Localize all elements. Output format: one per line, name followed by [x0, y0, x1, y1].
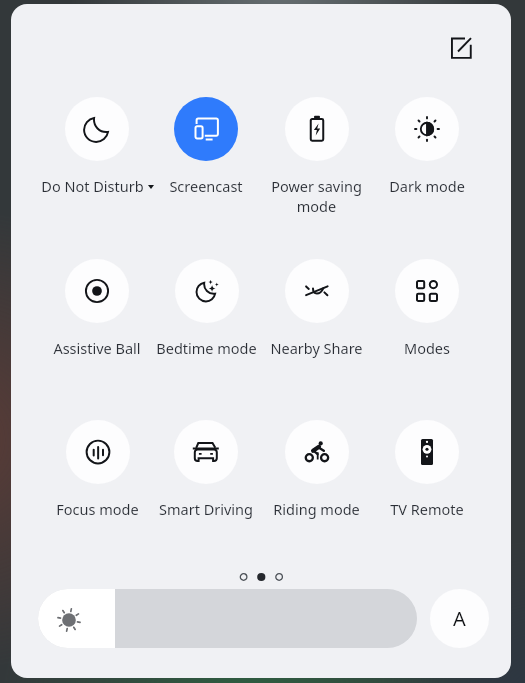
button[interactable]: Brightness: [38, 589, 417, 648]
staticText: Screencast: [169, 176, 243, 196]
staticText: TV Remote: [390, 499, 464, 519]
button[interactable]: Do Not Disturb: [42, 97, 152, 196]
staticText: A: [453, 605, 466, 632]
button[interactable]: Modes: [372, 259, 482, 358]
button[interactable]: Nearby Share: [261, 259, 371, 358]
button[interactable]: Power saving mode: [261, 97, 371, 217]
button[interactable]: Focus mode: [42, 420, 152, 519]
button[interactable]: A: [430, 589, 489, 648]
button[interactable]: Riding mode: [261, 420, 371, 519]
staticText: Modes: [404, 338, 450, 358]
staticText: Assistive Ball: [53, 338, 141, 358]
staticText: Bedtime mode: [156, 338, 257, 358]
staticText: Do Not Disturb: [41, 176, 144, 196]
button[interactable]: Dark mode: [372, 97, 482, 196]
staticText: Nearby Share: [270, 338, 363, 358]
button[interactable]: Edit quick settings: [439, 26, 483, 70]
button[interactable]: Screencast: [151, 97, 261, 196]
staticText: Smart Driving: [159, 499, 253, 519]
staticText: Riding mode: [273, 499, 360, 519]
staticText: Power saving mode: [271, 176, 362, 217]
staticText: Focus mode: [56, 499, 139, 519]
button[interactable]: TV Remote: [372, 420, 482, 519]
button[interactable]: Assistive Ball: [42, 259, 152, 358]
button[interactable]: Smart Driving: [151, 420, 261, 519]
button[interactable]: Bedtime mode: [151, 259, 261, 358]
staticText: Dark mode: [389, 176, 465, 196]
